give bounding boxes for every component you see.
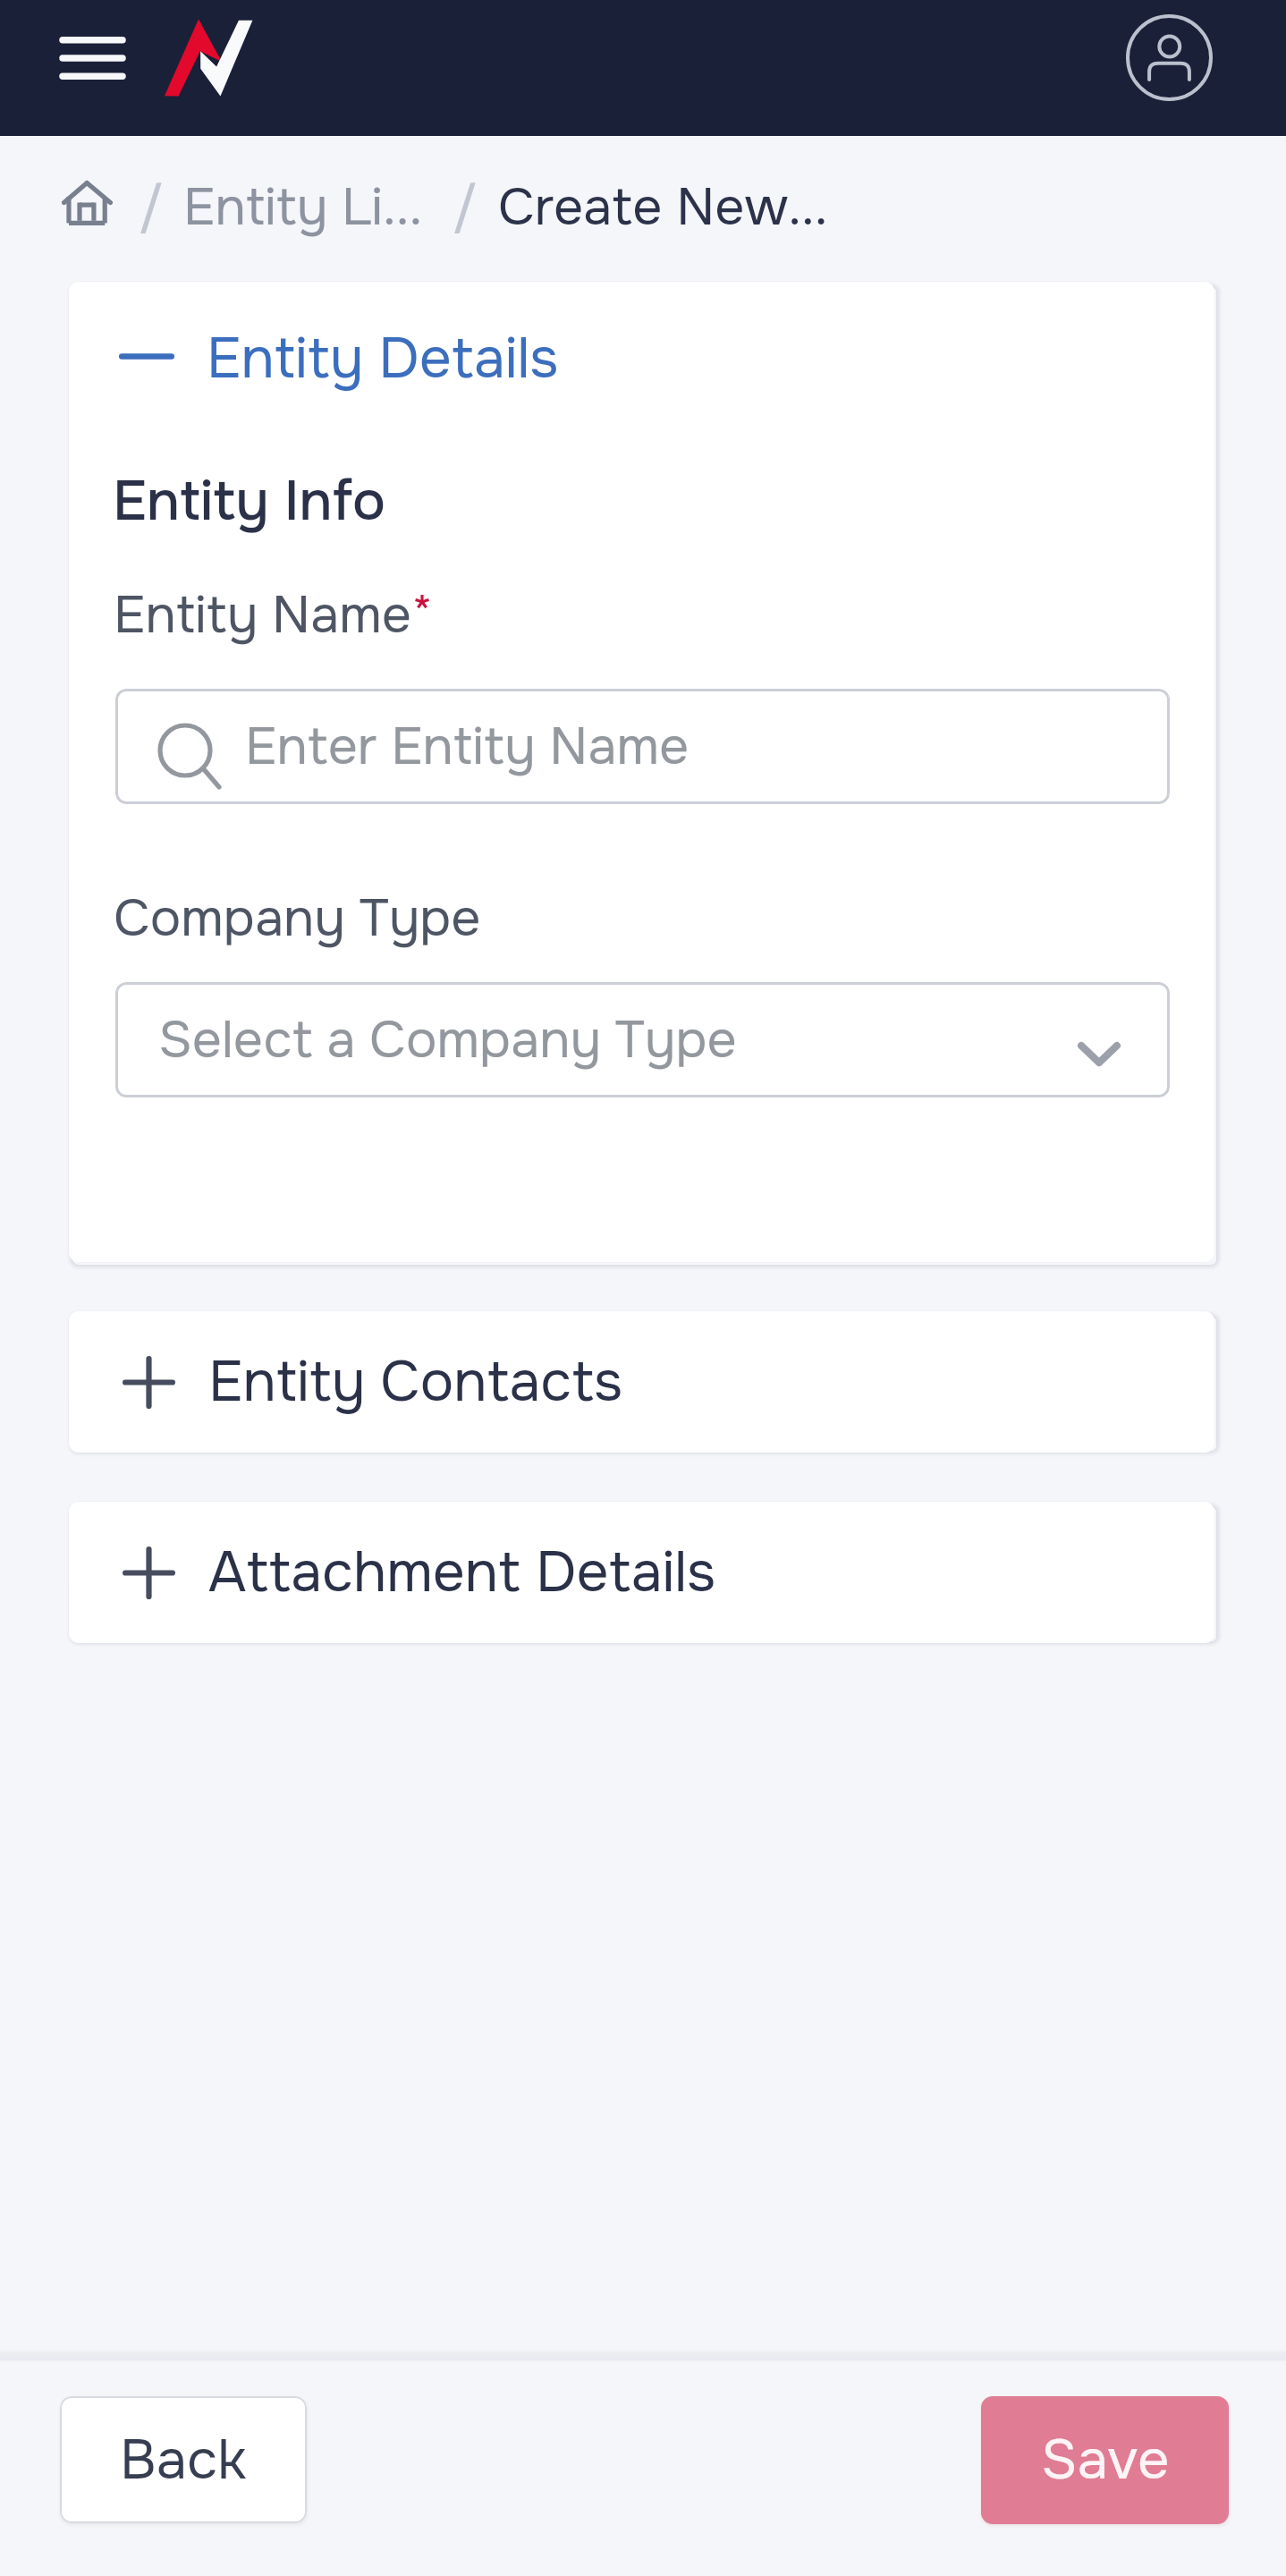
staticText: * [411, 582, 434, 648]
button[interactable]: Entity Details [69, 323, 1214, 394]
button[interactable]: Attachment Details [69, 1502, 1214, 1643]
staticText: Entity Contacts [208, 1346, 623, 1418]
staticText: Entity Details [207, 323, 559, 394]
button[interactable]: Account [1120, 8, 1219, 107]
button[interactable]: Entity Contacts [69, 1311, 1214, 1453]
staticText: Attachment Details [208, 1537, 716, 1608]
button[interactable]: Enter Entity Name [115, 689, 1170, 804]
staticText: Create New... [498, 174, 828, 241]
staticText: Entity Li... [183, 174, 423, 241]
staticText: Back [120, 2425, 247, 2495]
button[interactable]: Entity Li... [183, 174, 423, 241]
staticText: Save [1041, 2425, 1170, 2495]
button[interactable]: Home [59, 177, 114, 229]
staticText: Entity Name [114, 582, 411, 648]
button[interactable]: Save [981, 2396, 1229, 2524]
staticText: / [453, 174, 478, 241]
button[interactable]: Back [60, 2396, 307, 2523]
staticText: Select a Company Type [158, 1007, 737, 1073]
staticText: Entity Info [113, 466, 385, 537]
staticText: Enter Entity Name [245, 714, 690, 780]
button[interactable]: Select a Company Type [115, 982, 1170, 1097]
button[interactable]: Open navigation menu [43, 7, 141, 109]
staticText: / [139, 174, 164, 241]
staticText: Company Type [114, 885, 481, 952]
